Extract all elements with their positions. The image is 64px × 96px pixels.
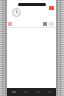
button[interactable]: Tab 1 (7, 88, 20, 96)
button[interactable]: Tab 4 (44, 88, 56, 96)
button[interactable]: Notifications (49, 6, 54, 10)
button[interactable]: Tab 2 (20, 88, 32, 96)
button[interactable]: Filter (8, 22, 12, 26)
button[interactable]: Grid view (43, 22, 47, 26)
button[interactable]: Profile (12, 8, 21, 17)
button[interactable]: Tab 3 (32, 88, 44, 96)
